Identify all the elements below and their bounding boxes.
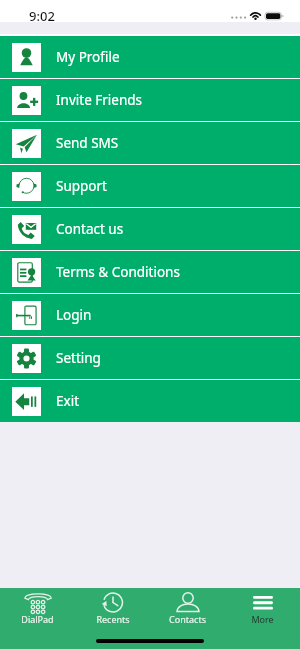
button[interactable]: Login: [0, 294, 300, 336]
staticText: 9:02: [29, 7, 55, 25]
button[interactable]: Contacts: [150, 588, 225, 625]
staticText: Support: [56, 177, 107, 195]
button[interactable]: Terms & Conditions: [0, 251, 300, 293]
button[interactable]: More: [225, 588, 300, 625]
button[interactable]: DialPad: [0, 588, 75, 625]
button[interactable]: Send SMS: [0, 122, 300, 164]
staticText: Login: [56, 306, 92, 324]
button[interactable]: Exit: [0, 380, 300, 422]
button[interactable]: Recents: [75, 588, 150, 625]
staticText: DialPad: [21, 613, 54, 625]
staticText: My Profile: [56, 48, 120, 66]
staticText: Setting: [56, 349, 101, 367]
staticText: Contact us: [56, 220, 124, 238]
staticText: Terms & Conditions: [56, 263, 180, 281]
button[interactable]: Invite Friends: [0, 79, 300, 121]
button[interactable]: Support: [0, 165, 300, 207]
staticText: More: [251, 613, 274, 625]
staticText: Send SMS: [56, 134, 119, 152]
button[interactable]: My Profile: [0, 36, 300, 78]
staticText: Exit: [56, 392, 80, 410]
button[interactable]: Setting: [0, 337, 300, 379]
staticText: Contacts: [169, 613, 206, 625]
staticText: Invite Friends: [56, 91, 143, 109]
button[interactable]: Contact us: [0, 208, 300, 250]
staticText: Recents: [96, 613, 130, 625]
